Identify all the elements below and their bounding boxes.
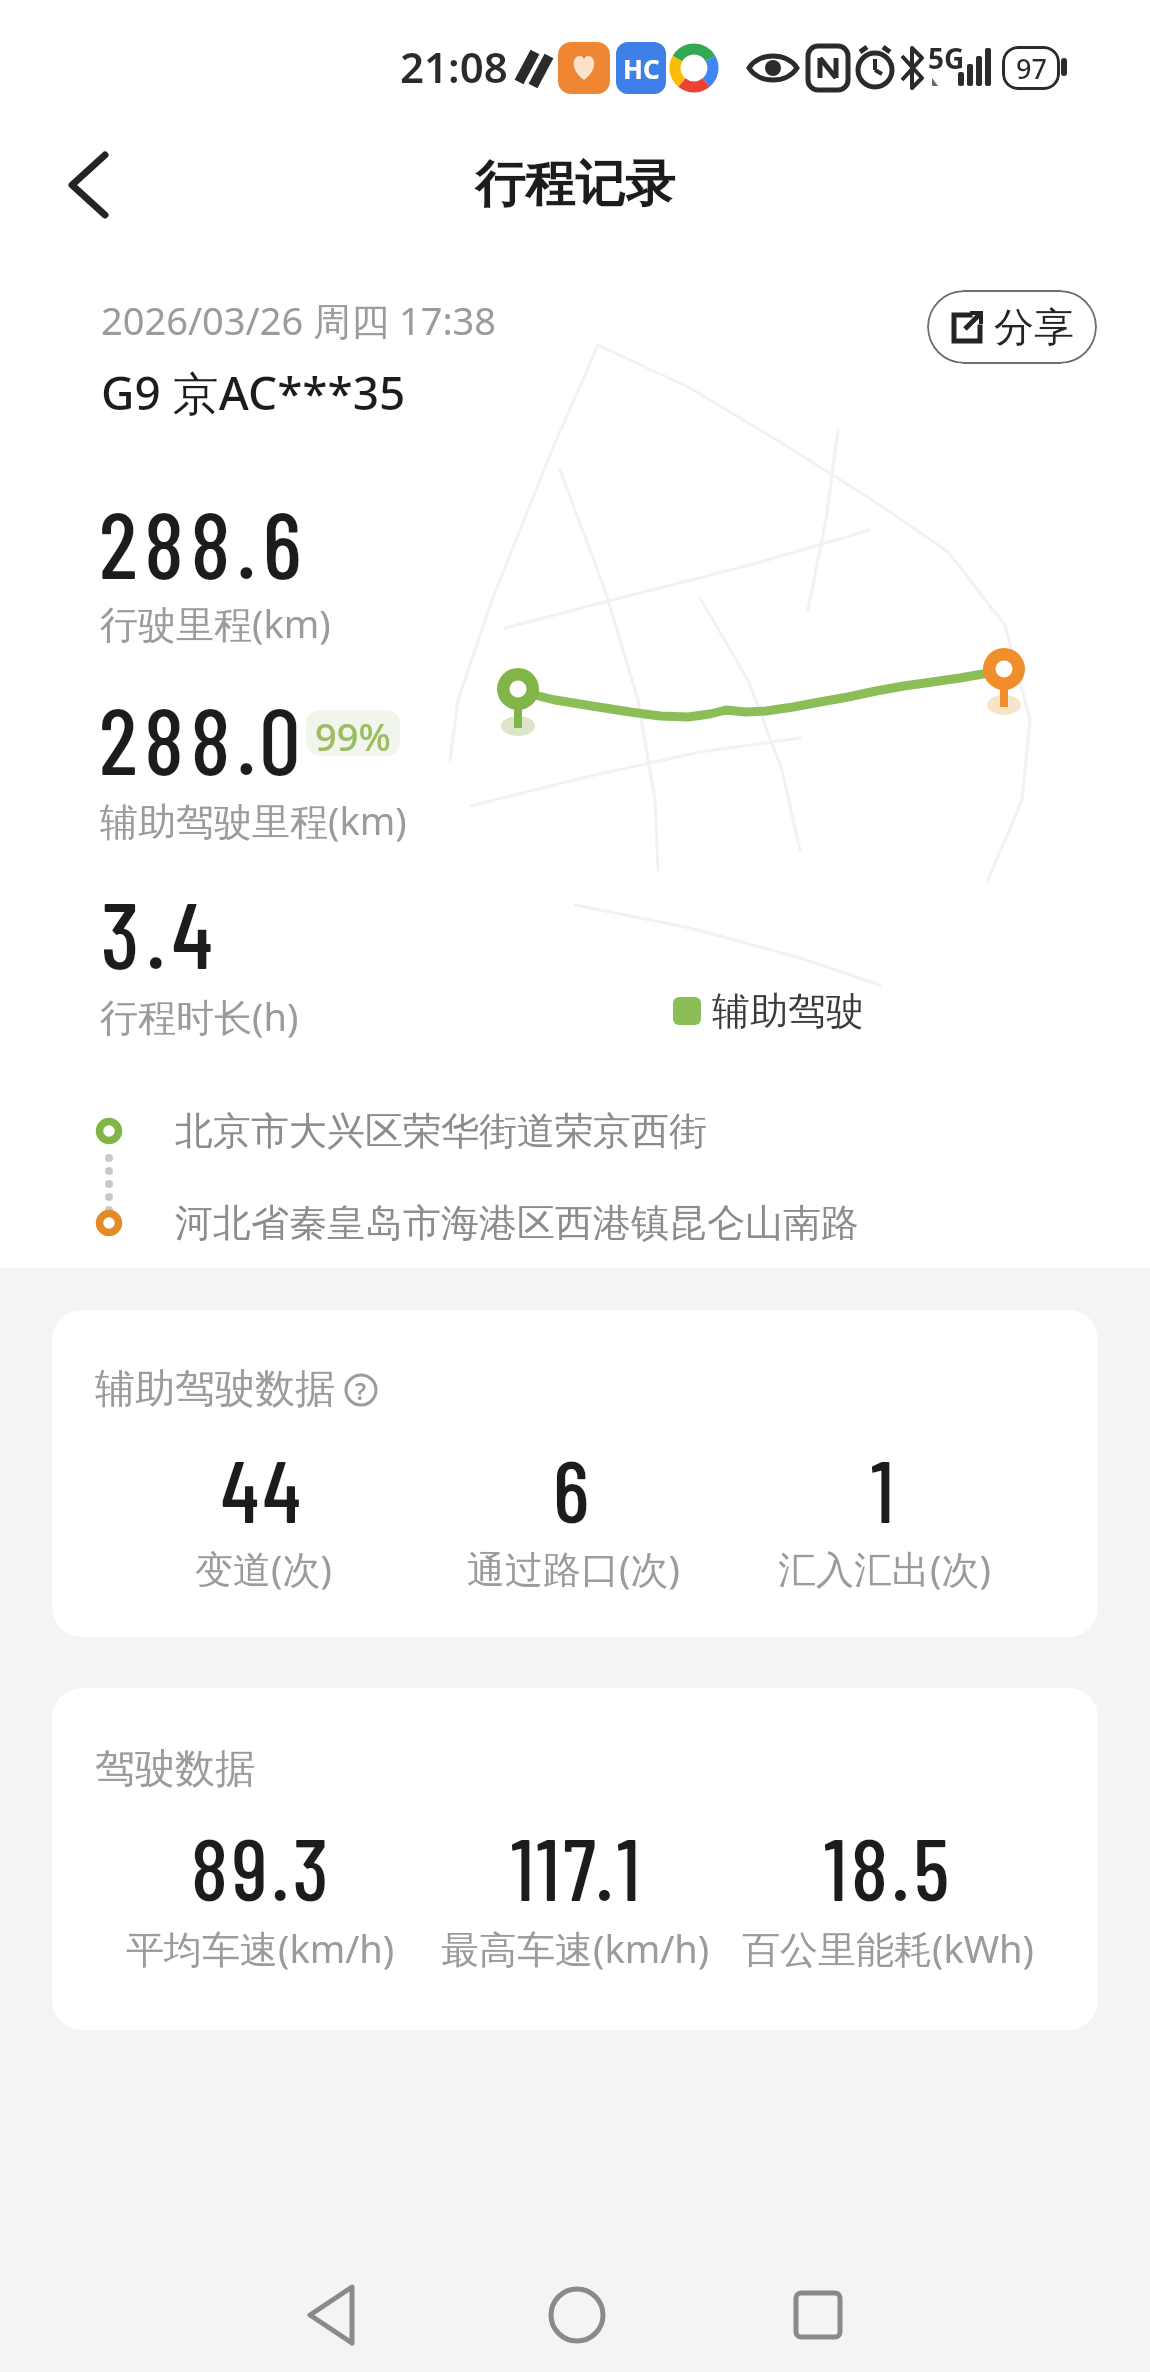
staticText: ?	[355, 1374, 367, 1407]
staticText: 汇入汇出(次)	[778, 1542, 991, 1594]
button[interactable]: 分享	[927, 290, 1097, 364]
staticText: 3.4	[101, 877, 220, 987]
staticText: 辅助驾驶数据	[95, 1363, 335, 1413]
button[interactable]: ?	[343, 1372, 379, 1408]
staticText: 18.5	[824, 1815, 954, 1918]
button[interactable]	[537, 2275, 617, 2355]
staticText: HC	[623, 51, 660, 86]
staticText: 辅助驾驶里程(km)	[100, 794, 407, 846]
staticText: 最高车速(km/h)	[441, 1922, 710, 1974]
staticText: 44	[221, 1437, 305, 1540]
staticText: 1	[871, 1437, 898, 1540]
staticText: 河北省秦皇岛市海港区西港镇昆仑山南路	[175, 1199, 859, 1247]
staticText: 分享	[994, 302, 1074, 352]
staticText: 5G	[928, 39, 965, 77]
staticText: 行程记录	[475, 153, 675, 216]
staticText: 97	[1016, 50, 1047, 87]
staticText: 89.3	[191, 1815, 333, 1918]
staticText: 行驶里程(km)	[100, 597, 331, 649]
staticText: 北京市大兴区荣华街道荣京西街	[175, 1107, 707, 1155]
button[interactable]	[297, 2275, 377, 2355]
staticText: 变道(次)	[195, 1542, 332, 1594]
staticText: 117.1	[511, 1815, 644, 1918]
staticText: 288.6	[99, 487, 309, 597]
staticText: 百公里能耗(kWh)	[742, 1922, 1034, 1974]
button[interactable]	[778, 2275, 858, 2355]
staticText: 行程时长(h)	[100, 990, 299, 1042]
staticText: 通过路口(次)	[467, 1542, 680, 1594]
staticText: 99%	[315, 710, 391, 756]
staticText: 平均车速(km/h)	[126, 1922, 395, 1974]
staticText: 288.0	[99, 683, 308, 793]
staticText: 驾驶数据	[95, 1743, 255, 1793]
staticText: 6	[553, 1437, 594, 1540]
staticText: 辅助驾驶	[712, 987, 864, 1035]
staticText: 21:08	[400, 38, 508, 95]
staticText: 2026/03/26 周四 17:38	[101, 294, 497, 346]
button[interactable]	[60, 145, 120, 225]
staticText: G9 京AC***35	[101, 361, 406, 424]
